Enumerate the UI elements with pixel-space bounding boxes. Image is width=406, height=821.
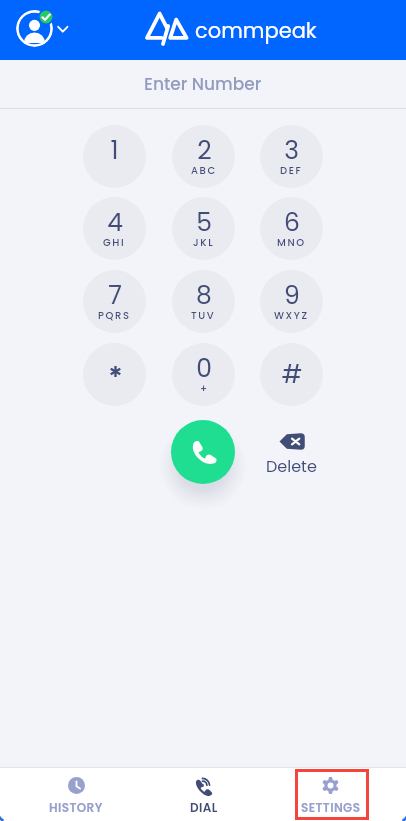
button[interactable]: 1: [83, 125, 146, 188]
staticText: JKL: [193, 235, 215, 249]
button[interactable]: #: [260, 343, 323, 406]
button[interactable]: Account: [16, 10, 53, 47]
staticText: 9: [284, 278, 300, 313]
button[interactable]: 5: [172, 197, 235, 260]
button[interactable]: Delete: [258, 433, 325, 477]
button[interactable]: 8: [172, 270, 235, 333]
staticText: SETTINGS: [301, 799, 361, 816]
staticText: TUV: [191, 308, 216, 322]
staticText: DIAL: [190, 799, 218, 816]
staticText: +: [200, 381, 209, 395]
button[interactable]: 6: [260, 197, 323, 260]
staticText: 6: [284, 205, 300, 240]
staticText: PQRS: [98, 308, 131, 322]
button[interactable]: HISTORY: [12, 768, 140, 821]
staticText: 0: [196, 351, 212, 386]
staticText: Enter Number: [144, 72, 262, 96]
staticText: WXYZ: [274, 308, 309, 322]
staticText: 4: [107, 205, 123, 240]
button[interactable]: 3: [260, 125, 323, 188]
staticText: 7: [108, 278, 122, 313]
staticText: #: [281, 357, 303, 392]
staticText: MNO: [277, 235, 306, 249]
button[interactable]: SETTINGS: [267, 768, 394, 821]
staticText: 2: [197, 133, 212, 168]
button[interactable]: [83, 343, 146, 406]
button[interactable]: 0: [172, 343, 235, 406]
staticText: 3: [284, 133, 299, 168]
staticText: DEF: [280, 163, 303, 177]
button[interactable]: 4: [83, 197, 146, 260]
button[interactable]: 7: [83, 270, 146, 333]
staticText: 1: [110, 133, 119, 168]
button[interactable]: Call: [171, 420, 235, 484]
staticText: GHI: [103, 235, 126, 249]
staticText: 8: [196, 278, 212, 313]
staticText: Delete: [266, 455, 317, 477]
button[interactable]: DIAL: [140, 768, 267, 821]
staticText: HISTORY: [49, 799, 103, 816]
staticText: ABC: [191, 163, 217, 177]
button[interactable]: 9: [260, 270, 323, 333]
button[interactable]: 2: [172, 125, 235, 188]
staticText: 5: [196, 205, 212, 240]
staticText: commpeak: [195, 16, 317, 45]
button[interactable]: Account menu: [54, 18, 76, 40]
